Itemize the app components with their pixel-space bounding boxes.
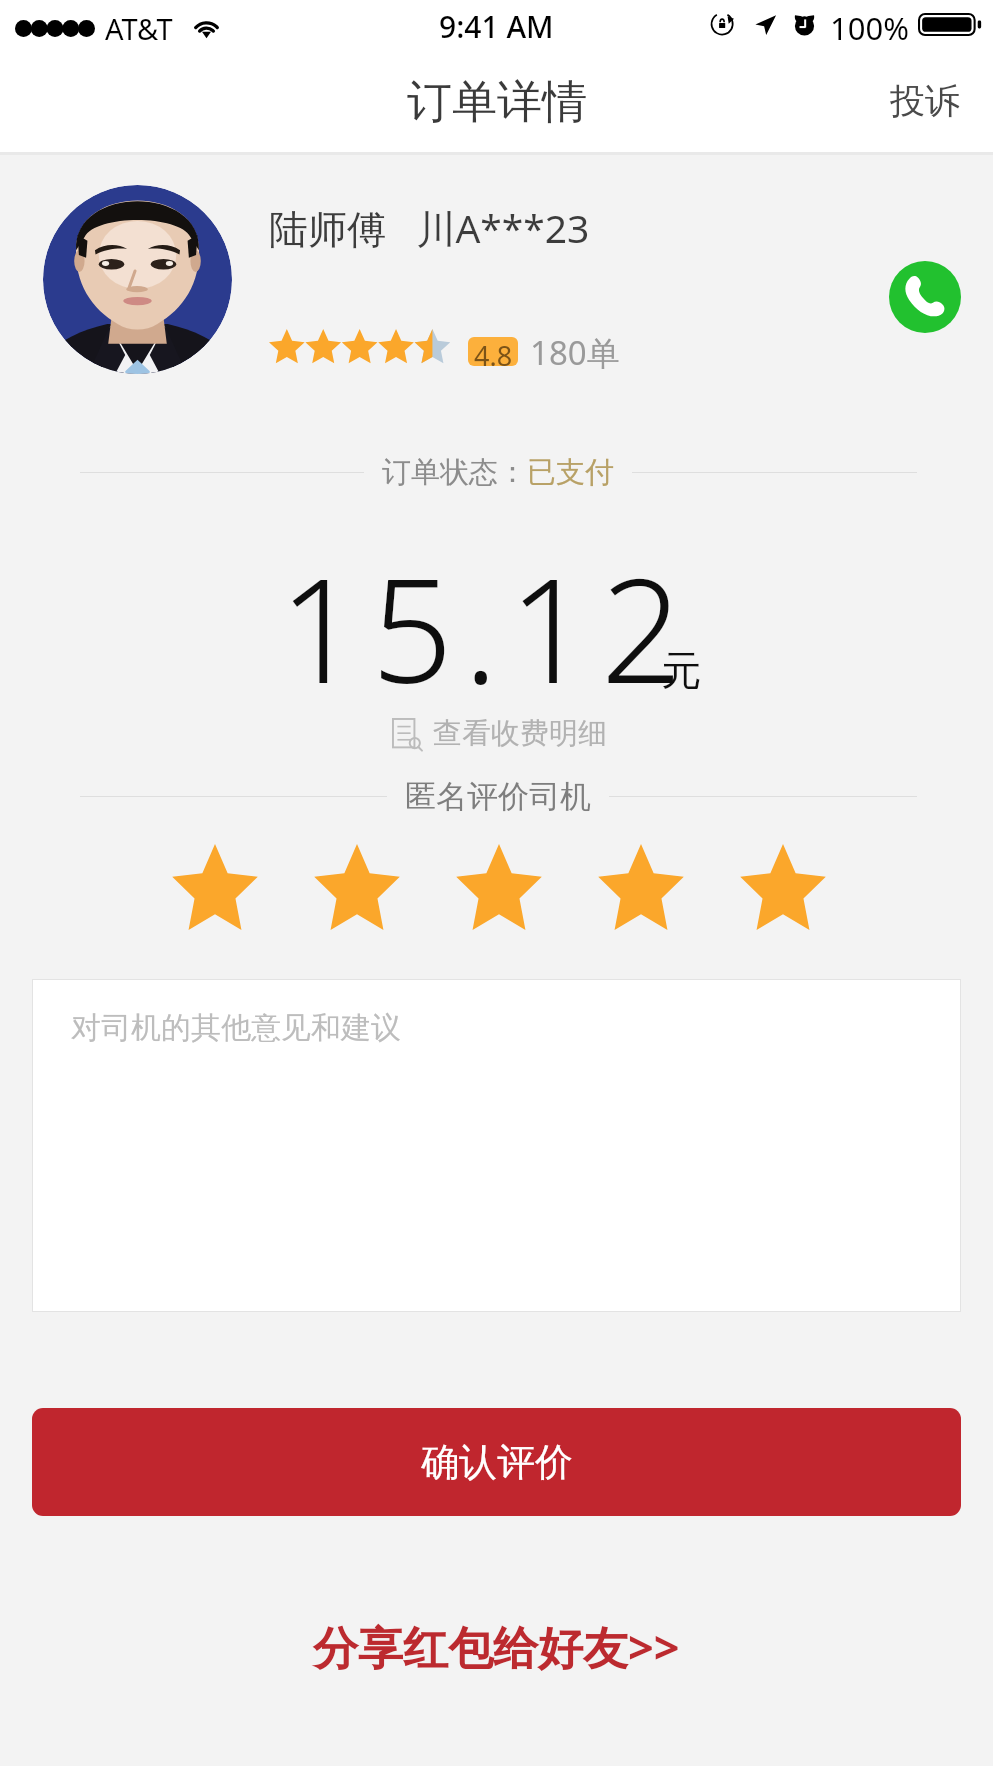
staticText: 分享红包给好友>> xyxy=(313,1616,680,1677)
staticText: 180单 xyxy=(530,330,620,375)
button[interactable]: Rate 1 stars xyxy=(142,838,284,936)
staticText: 投诉 xyxy=(890,79,960,123)
staticText: 对司机的其他意见和建议 xyxy=(71,1009,401,1047)
staticText: 9:41 AM xyxy=(439,6,554,47)
button[interactable]: 确认评价 xyxy=(32,1408,961,1516)
staticText: 订单状态： xyxy=(382,454,527,491)
button[interactable]: Rate 4 stars xyxy=(568,838,710,936)
staticText: AT&T xyxy=(105,9,173,48)
button[interactable]: Rate 5 stars xyxy=(710,838,852,936)
button[interactable]: 对司机的其他意见和建议 xyxy=(32,979,961,1312)
staticText: 确认评价 xyxy=(421,1438,573,1486)
button[interactable]: 查看收费明细 xyxy=(384,711,615,756)
staticText: 15.12 xyxy=(279,530,694,725)
staticText: 元 xyxy=(661,645,701,695)
button[interactable]: 投诉 xyxy=(860,71,993,137)
button[interactable]: Call driver xyxy=(889,261,961,333)
staticText: 匿名评价司机 xyxy=(405,777,591,816)
staticText: 100% xyxy=(830,7,909,49)
button[interactable]: 分享红包给好友>> xyxy=(293,1606,700,1687)
staticText: 订单详情 xyxy=(407,74,587,131)
staticText: 查看收费明细 xyxy=(433,715,607,752)
staticText: 陆师傅 川A***23 xyxy=(269,201,590,254)
button[interactable]: Driver avatar xyxy=(43,185,232,374)
button[interactable]: Rate 3 stars xyxy=(426,838,568,936)
button[interactable]: Rate 2 stars xyxy=(284,838,426,936)
staticText: 已支付 xyxy=(527,454,614,491)
staticText: 4.8 xyxy=(474,337,513,366)
